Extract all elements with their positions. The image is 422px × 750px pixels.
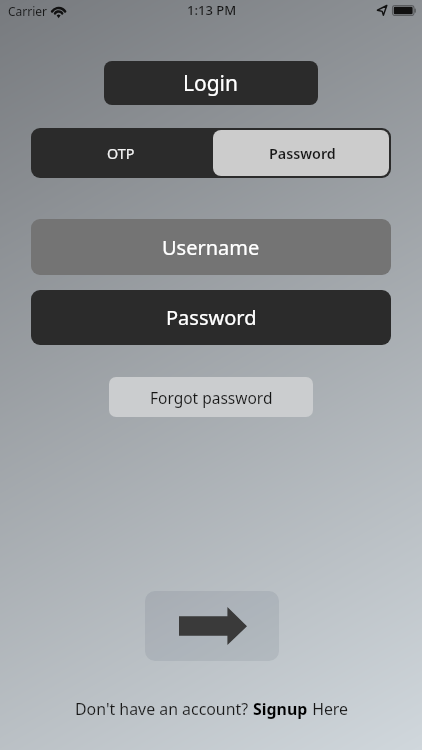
staticText: Forgot password [150,387,273,408]
staticText: Password [269,144,336,163]
staticText: Password [166,304,257,331]
staticText: Username [162,234,260,261]
staticText: Login [183,69,239,98]
staticText: Here [308,698,349,720]
button[interactable]: Don't have an account? [75,698,349,720]
staticText: OTP [107,144,135,163]
button[interactable]: Continue [145,591,279,661]
button[interactable]: Login [104,61,318,105]
staticText: Signup [253,698,308,720]
button[interactable]: Username [31,219,391,275]
staticText: 1:13 PM [187,1,237,19]
button[interactable]: Password [31,290,391,345]
button[interactable]: Forgot password [109,377,313,417]
button[interactable]: Password [213,130,389,176]
staticText: Don't have an account? [75,698,253,720]
staticText: Carrier [8,3,48,19]
button[interactable]: OTP [31,128,213,178]
